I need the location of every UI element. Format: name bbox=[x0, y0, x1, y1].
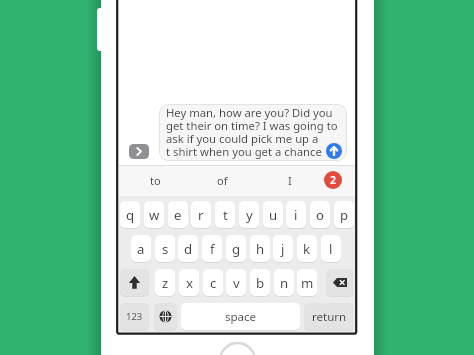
staticText: h bbox=[256, 240, 265, 258]
staticText: e bbox=[174, 206, 182, 224]
button[interactable]: i bbox=[286, 201, 306, 228]
button[interactable]: p bbox=[334, 201, 354, 228]
staticText: m bbox=[301, 274, 314, 292]
button[interactable]: q bbox=[120, 201, 140, 228]
button[interactable]: b bbox=[250, 269, 270, 296]
button[interactable]: n bbox=[274, 269, 294, 296]
button[interactable]: space bbox=[181, 303, 300, 330]
button[interactable]: h bbox=[250, 235, 270, 262]
button[interactable]: j bbox=[273, 235, 293, 262]
button[interactable]: y bbox=[239, 201, 259, 228]
staticText: c bbox=[210, 274, 217, 292]
button[interactable]: k bbox=[297, 235, 317, 262]
staticText: l bbox=[329, 240, 333, 258]
staticText: a bbox=[137, 240, 145, 258]
staticText: j bbox=[281, 240, 285, 258]
button[interactable]: e bbox=[168, 201, 188, 228]
staticText: p bbox=[340, 206, 349, 224]
button[interactable]: v bbox=[226, 269, 246, 296]
button[interactable]: c bbox=[203, 269, 223, 296]
staticText: i bbox=[294, 206, 298, 224]
staticText: n bbox=[280, 274, 289, 292]
button[interactable]: l bbox=[321, 235, 341, 262]
staticText: return bbox=[312, 309, 347, 325]
staticText: of bbox=[217, 173, 228, 188]
staticText: g bbox=[232, 240, 241, 258]
button[interactable]: 123 bbox=[120, 303, 149, 330]
button[interactable] bbox=[326, 143, 342, 159]
staticText: k bbox=[303, 240, 311, 258]
button[interactable]: t bbox=[215, 201, 235, 228]
button[interactable]: x bbox=[179, 269, 199, 296]
button[interactable]: m bbox=[297, 269, 317, 296]
button[interactable] bbox=[129, 144, 149, 159]
staticText: space bbox=[225, 309, 257, 325]
button[interactable]: z bbox=[155, 269, 175, 296]
button[interactable]: s bbox=[155, 235, 175, 262]
staticText: ask if you could pick me up a bbox=[166, 131, 319, 146]
button[interactable]: of bbox=[198, 170, 246, 190]
staticText: f bbox=[210, 240, 215, 258]
staticText: 2 bbox=[330, 173, 337, 187]
staticText: q bbox=[126, 206, 135, 224]
button[interactable]: u bbox=[263, 201, 283, 228]
button[interactable]: I bbox=[266, 170, 314, 190]
button[interactable] bbox=[120, 269, 149, 296]
staticText: Hey man, how are you? Did you bbox=[166, 105, 333, 120]
staticText: v bbox=[233, 274, 240, 292]
button[interactable]: a bbox=[131, 235, 151, 262]
staticText: b bbox=[256, 274, 265, 292]
staticText: to bbox=[150, 173, 161, 188]
button[interactable]: g bbox=[226, 235, 246, 262]
button[interactable]: 2 bbox=[324, 171, 342, 189]
staticText: I bbox=[288, 173, 292, 188]
button[interactable]: r bbox=[191, 201, 211, 228]
staticText: y bbox=[246, 206, 253, 224]
button[interactable] bbox=[154, 303, 177, 330]
staticText: u bbox=[269, 206, 278, 224]
button[interactable]: o bbox=[310, 201, 330, 228]
staticText: d bbox=[184, 240, 193, 258]
staticText: get their on time? I was going to bbox=[166, 118, 338, 133]
button[interactable] bbox=[159, 104, 347, 161]
staticText: r bbox=[198, 206, 204, 224]
button[interactable] bbox=[326, 269, 354, 296]
staticText: t shirt when you get a chance bbox=[166, 144, 322, 159]
button[interactable]: to bbox=[131, 170, 179, 190]
button[interactable]: w bbox=[144, 201, 164, 228]
staticText: x bbox=[186, 274, 193, 292]
staticText: o bbox=[316, 206, 324, 224]
staticText: s bbox=[162, 240, 169, 258]
staticText: w bbox=[149, 206, 160, 224]
button[interactable]: d bbox=[178, 235, 198, 262]
staticText: 123 bbox=[126, 310, 143, 323]
staticText: z bbox=[162, 274, 169, 292]
staticText: t bbox=[223, 206, 228, 224]
button[interactable]: f bbox=[202, 235, 222, 262]
button[interactable]: return bbox=[304, 303, 354, 330]
